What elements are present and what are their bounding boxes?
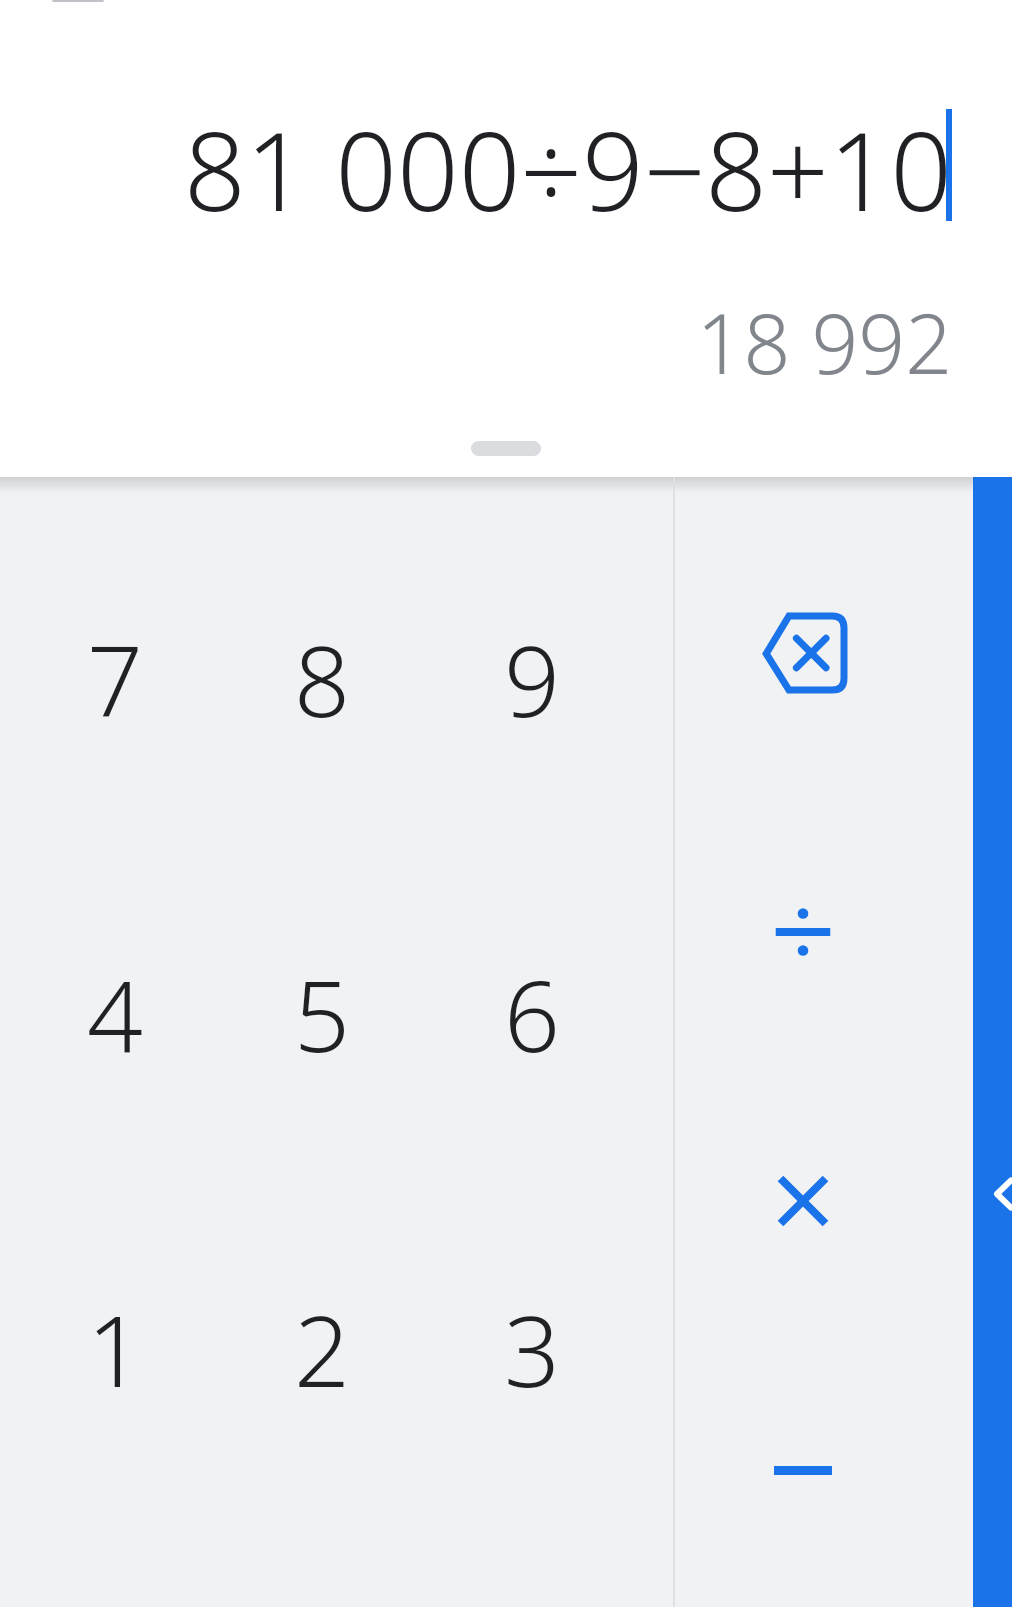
button[interactable]: Multiply (703, 1101, 903, 1301)
button[interactable]: 4 (15, 913, 215, 1113)
staticText: 9 (504, 612, 560, 745)
staticText: 1 (87, 1282, 143, 1415)
button[interactable]: 1 (15, 1248, 215, 1448)
staticText: 18 992 (24, 286, 952, 398)
button[interactable]: 9 (432, 578, 632, 778)
staticText: 81 000÷9−8+10 000 (24, 96, 952, 243)
staticText: 3 (504, 1282, 560, 1415)
button[interactable]: 6 (432, 913, 632, 1113)
button[interactable]: 5 (222, 913, 422, 1113)
staticText: 4 (87, 947, 143, 1080)
button[interactable]: 3 (432, 1248, 632, 1448)
button[interactable]: 8 (222, 578, 422, 778)
button[interactable]: 7 (15, 578, 215, 778)
staticText: 8 (294, 612, 350, 745)
staticText: 5 (294, 947, 350, 1080)
staticText: 7 (87, 612, 143, 745)
staticText: 2 (294, 1282, 350, 1415)
button[interactable]: Divide (703, 832, 903, 1032)
button[interactable]: Equals (973, 477, 1012, 1607)
button[interactable]: Minus (703, 1370, 903, 1570)
staticText: 6 (504, 947, 560, 1080)
button[interactable]: Backspace (703, 553, 903, 753)
button[interactable]: 2 (222, 1248, 422, 1448)
